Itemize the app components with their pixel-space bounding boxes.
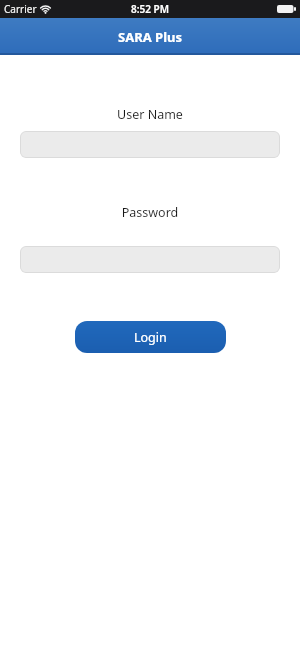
staticText: SARA Plus (118, 28, 182, 46)
staticText: Password (0, 204, 300, 221)
staticText: 8:52 PM (131, 2, 169, 16)
button[interactable]: Login (75, 321, 226, 353)
button[interactable] (20, 131, 280, 158)
button[interactable] (20, 246, 280, 273)
staticText: Carrier (4, 2, 37, 16)
staticText: User Name (0, 106, 300, 123)
staticText: Login (134, 329, 167, 346)
